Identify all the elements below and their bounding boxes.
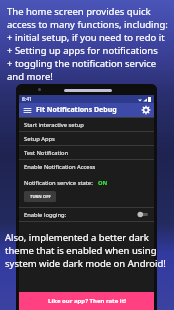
staticText: Start interactive setup xyxy=(24,121,84,129)
staticText: TURN OFF xyxy=(30,194,51,200)
staticText: The home screen provides quick xyxy=(7,5,151,18)
button[interactable]: Enable logging: xyxy=(19,208,154,221)
button[interactable]: TURN OFF xyxy=(24,191,56,202)
staticText: Setup Apps xyxy=(24,135,55,143)
button[interactable]: Settings xyxy=(140,104,152,116)
staticText: Notification service state: xyxy=(24,179,93,187)
staticText: theme that is enabled when using xyxy=(5,244,157,257)
staticText: Enable logging: xyxy=(24,211,67,219)
button[interactable]: Start interactive setup xyxy=(19,118,154,131)
staticText: access to many functions, including: xyxy=(7,18,168,31)
button[interactable]: Enable Notification Access xyxy=(19,160,154,173)
staticText: and more! xyxy=(7,70,53,83)
staticText: Fit Notifications Debug xyxy=(36,105,117,115)
staticText: + initial setup, if you need to redo it xyxy=(7,31,165,44)
button[interactable]: Like our app? Then rate it! xyxy=(19,292,154,310)
staticText: 8:41 xyxy=(22,96,32,103)
staticText: ON xyxy=(98,179,108,187)
button[interactable]: Setup Apps xyxy=(19,132,154,145)
staticText: + toggling the notification service xyxy=(7,57,157,70)
staticText: Enable Notification Access xyxy=(24,163,96,171)
staticText: Like our app? Then rate it! xyxy=(48,297,126,305)
staticText: + Setting up apps for notifications xyxy=(7,44,158,57)
staticText: Also, implemented a better dark xyxy=(5,231,149,244)
staticText: system wide dark mode on Android! xyxy=(5,257,166,270)
button[interactable]: Test Notification xyxy=(19,146,154,159)
staticText: Test Notification xyxy=(24,149,69,157)
button[interactable]: Open navigation menu xyxy=(21,104,33,116)
